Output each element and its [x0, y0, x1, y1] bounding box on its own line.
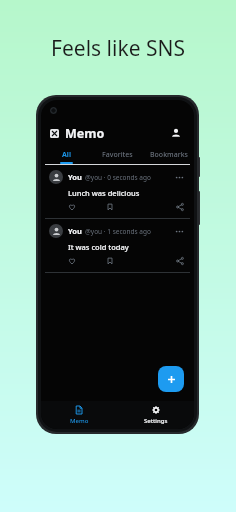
button[interactable]: Bookmarks [143, 146, 194, 164]
staticText: Lunch was delicious [68, 188, 140, 198]
button[interactable]: Settings [117, 401, 194, 429]
button[interactable]: You [41, 165, 194, 218]
staticText: Favorites [102, 150, 133, 160]
staticText: @you · 1 seconds ago [85, 227, 151, 236]
staticText: Memo [70, 417, 89, 425]
button[interactable]: Like [68, 201, 106, 213]
button[interactable]: Share [145, 201, 184, 213]
staticText: Bookmarks [150, 150, 188, 160]
button[interactable]: You [41, 219, 194, 272]
staticText: All [62, 150, 72, 160]
button[interactable]: Add memo [158, 366, 184, 392]
staticText: You [68, 172, 82, 182]
staticText: Feels like SNS [0, 34, 236, 63]
button[interactable]: Account [167, 124, 185, 142]
button[interactable]: Bookmark [106, 201, 145, 213]
button[interactable]: Like [68, 255, 106, 267]
button[interactable]: All [41, 146, 92, 164]
button[interactable]: More options [173, 171, 186, 184]
button[interactable]: Favorites [92, 146, 143, 164]
button[interactable]: Share [145, 255, 184, 267]
staticText: It was cold today [68, 242, 129, 252]
staticText: Settings [144, 417, 168, 425]
staticText: You [68, 226, 82, 236]
button[interactable]: Bookmark [106, 255, 145, 267]
button[interactable]: More options [173, 225, 186, 238]
staticText: Memo [65, 125, 105, 142]
button[interactable]: Memo [41, 401, 117, 429]
staticText: @you · 0 seconds ago [85, 173, 151, 182]
